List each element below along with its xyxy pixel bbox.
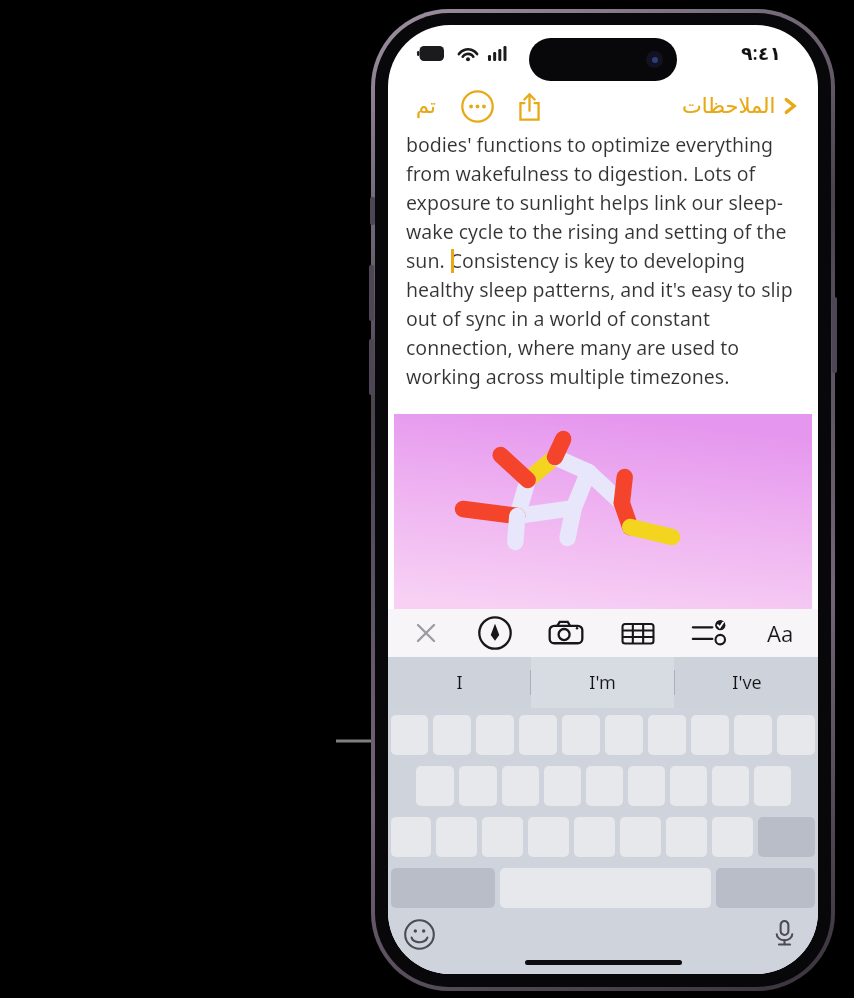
button[interactable]: تم [410,89,442,123]
staticText: الملاحظات [682,94,776,118]
staticText: I've [732,670,762,695]
button[interactable]: Table [620,615,656,651]
button[interactable]: Share [513,90,546,123]
staticText: from wakefulness to digestion. Lots of [406,160,756,187]
button[interactable]: Camera [547,614,585,652]
staticText: sun. Consistency is key to developing [406,247,745,274]
staticText: I [456,670,463,695]
staticText: ٩:٤١ [741,40,782,66]
staticText: out of sync in a world of constant [406,305,710,332]
staticText: working across multiple timezones. [406,363,730,390]
button[interactable]: More options [461,90,494,123]
staticText: exposure to sunlight helps link our slee… [406,189,784,216]
staticText: wake cycle to the rising and setting of … [406,218,787,245]
button[interactable]: Dictate [769,917,800,948]
staticText: healthy sleep patterns, and it's easy to… [406,276,793,303]
button[interactable]: Markup [478,616,512,650]
button[interactable]: Aa [764,614,797,652]
staticText: connection, where many are used to [406,334,740,361]
staticText: Aa [767,618,794,648]
button[interactable]: Emoji [404,919,435,950]
button[interactable]: Close [409,616,443,650]
button[interactable]: الملاحظات [682,90,801,122]
button[interactable]: I [388,657,530,708]
button[interactable]: I'm [531,657,674,708]
button[interactable]: Checklist [691,614,729,652]
button[interactable]: I've [675,657,818,708]
staticText: bodies' functions to optimize everything [406,131,774,158]
staticText: تم [416,94,436,118]
staticText: I'm [589,670,616,695]
